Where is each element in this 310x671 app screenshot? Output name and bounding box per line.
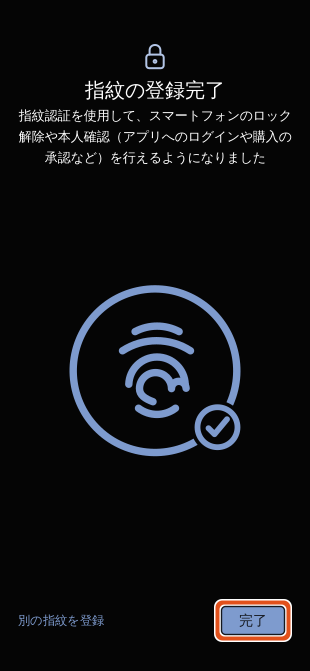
staticText: 指紋の登録完了 [85, 78, 225, 103]
staticText: 完了 [239, 612, 267, 629]
button[interactable]: 別の指紋を登録 [18, 613, 104, 628]
staticText: 別の指紋を登録 [18, 613, 104, 628]
button[interactable]: 完了 [214, 599, 292, 642]
staticText: 指紋認証を使用して、スマートフォンのロック 解除や本人確認（アプリへのログインや… [18, 108, 291, 166]
